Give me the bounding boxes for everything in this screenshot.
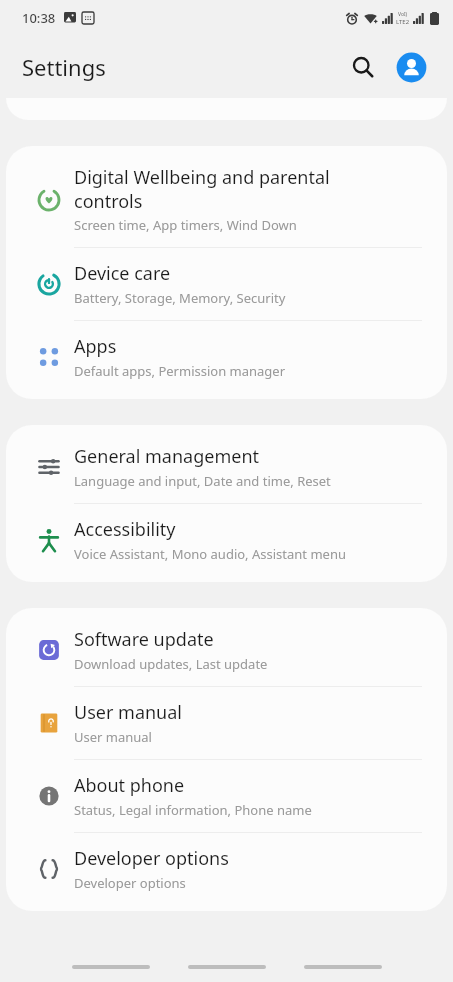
button[interactable]: Search <box>341 45 385 89</box>
staticText: Device care <box>74 261 171 286</box>
button[interactable]: Apps <box>6 321 447 393</box>
button[interactable]: Device care <box>6 248 447 320</box>
button[interactable]: About phone <box>6 760 447 832</box>
staticText: Developer options <box>74 874 186 892</box>
staticText: 10:38 <box>22 9 56 27</box>
button[interactable]: Software update <box>6 614 447 686</box>
staticText: About phone <box>74 773 185 798</box>
button[interactable]: Accessibility <box>6 504 447 576</box>
staticText: LTE2 <box>396 18 410 26</box>
button[interactable]: Account <box>389 45 433 89</box>
staticText: Apps <box>74 334 117 359</box>
staticText: Developer options <box>74 846 229 871</box>
staticText: Settings <box>22 52 106 82</box>
staticText: Software update <box>74 627 214 652</box>
button[interactable]: Home <box>185 956 269 978</box>
staticText: General management <box>74 444 260 469</box>
staticText: VoI) <box>398 11 408 18</box>
staticText: User manual <box>74 728 152 746</box>
staticText: User manual <box>74 700 182 725</box>
staticText: Language and input, Date and time, Reset <box>74 472 331 490</box>
button[interactable]: Back <box>301 956 385 978</box>
staticText: Download updates, Last update <box>74 655 268 673</box>
staticText: Screen time, App timers, Wind Down <box>74 216 297 234</box>
staticText: Battery, Storage, Memory, Security <box>74 289 286 307</box>
button[interactable]: Developer options <box>6 833 447 905</box>
staticText: Digital Wellbeing and parental controls <box>74 165 330 213</box>
staticText: Default apps, Permission manager <box>74 362 286 380</box>
button[interactable]: Digital Wellbeing and parental controls <box>6 152 447 247</box>
button[interactable]: General management <box>6 431 447 503</box>
button[interactable]: User manual <box>6 687 447 759</box>
staticText: Voice Assistant, Mono audio, Assistant m… <box>74 545 346 563</box>
staticText: Status, Legal information, Phone name <box>74 801 312 819</box>
button[interactable]: Recents <box>69 956 153 978</box>
staticText: Accessibility <box>74 517 176 542</box>
